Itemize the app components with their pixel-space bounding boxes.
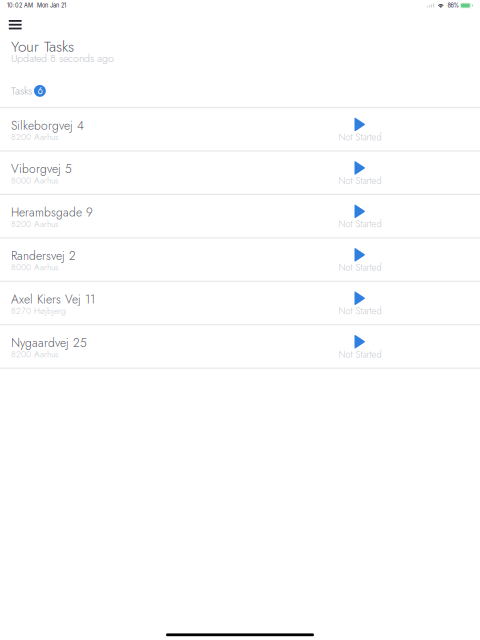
- staticText: 6: [37, 84, 42, 98]
- button[interactable]: Silkeborgvej 4: [0, 108, 480, 152]
- staticText: 10:02 AM: [7, 2, 33, 9]
- staticText: Not Started: [338, 304, 381, 318]
- staticText: Not Started: [338, 130, 381, 144]
- staticText: Tasks: [11, 83, 32, 99]
- staticText: Nygaardvej 25: [11, 334, 87, 351]
- staticText: 8200 Aarhus: [11, 348, 58, 360]
- staticText: Viborgvej 5: [11, 160, 72, 178]
- staticText: Silkeborgvej 4: [11, 117, 84, 134]
- staticText: Mon Jan 21: [37, 2, 66, 9]
- staticText: 8000 Aarhus: [11, 174, 58, 187]
- staticText: Randersvej 2: [11, 247, 76, 264]
- staticText: 8200 Aarhus: [11, 218, 58, 230]
- staticText: 8000 Aarhus: [11, 261, 58, 274]
- staticText: Not Started: [338, 174, 381, 187]
- button[interactable]: Menu: [0, 16, 30, 33]
- staticText: Axel Kiers Vej 11: [11, 291, 95, 308]
- staticText: Your Tasks: [11, 35, 74, 57]
- staticText: Not Started: [338, 217, 381, 231]
- staticText: 8270 Højbjerg: [11, 304, 66, 317]
- staticText: 8200 Aarhus: [11, 131, 58, 143]
- button[interactable]: Nygaardvej 25: [0, 325, 480, 369]
- button[interactable]: Axel Kiers Vej 11: [0, 282, 480, 325]
- staticText: Herambsgade 9: [11, 204, 93, 221]
- button[interactable]: Randersvej 2: [0, 238, 480, 282]
- button[interactable]: Herambsgade 9: [0, 195, 480, 238]
- staticText: Not Started: [338, 348, 381, 361]
- staticText: 86%: [447, 2, 458, 9]
- staticText: Not Started: [338, 261, 381, 274]
- button[interactable]: Viborgvej 5: [0, 152, 480, 195]
- staticText: Updated 8 seconds ago: [11, 51, 114, 66]
